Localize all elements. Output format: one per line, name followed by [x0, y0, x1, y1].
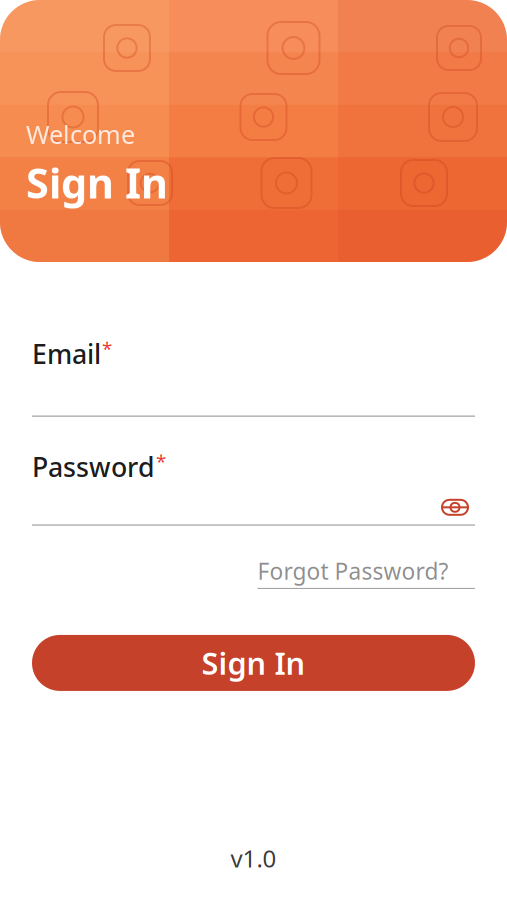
- staticText: v1.0: [230, 842, 276, 874]
- button[interactable]: Sign In: [32, 635, 475, 691]
- staticText: Welcome: [26, 117, 135, 151]
- staticText: Password: [32, 449, 155, 484]
- staticText: Email: [32, 336, 101, 371]
- staticText: *: [156, 449, 166, 474]
- button[interactable]: Forgot Password?: [257, 552, 475, 593]
- staticText: Sign In: [201, 643, 305, 683]
- button[interactable]: Show password: [435, 490, 475, 524]
- staticText: Sign In: [26, 155, 168, 210]
- staticText: *: [102, 336, 112, 361]
- staticText: Forgot Password?: [257, 556, 448, 586]
